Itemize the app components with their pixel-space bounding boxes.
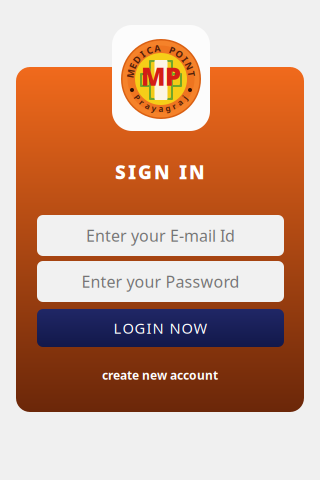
staticText: P: [158, 42, 164, 54]
staticText: E: [158, 42, 163, 54]
staticText: S I G N I N: [115, 160, 205, 184]
staticText: r: [159, 44, 163, 54]
button[interactable]: Enter your Password: [37, 261, 284, 302]
staticText: a: [158, 44, 163, 54]
staticText: M: [156, 42, 165, 54]
staticText: r: [159, 44, 163, 54]
staticText: y: [158, 44, 163, 54]
staticText: N: [157, 42, 165, 54]
staticText: I: [159, 42, 163, 54]
staticText: L O G I N N O W: [113, 318, 207, 338]
staticText: Enter your E-mail Id: [86, 225, 235, 246]
button[interactable]: L O G I N N O W: [37, 309, 284, 347]
button[interactable]: create new account: [16, 366, 304, 384]
staticText: create new account: [102, 367, 218, 383]
staticText: g: [158, 44, 163, 54]
staticText: A: [158, 42, 164, 54]
staticText: [160, 42, 162, 54]
staticText: T: [158, 42, 163, 54]
staticText: C: [158, 42, 164, 54]
staticText: a: [158, 44, 163, 54]
staticText: MP: [141, 59, 181, 93]
staticText: D: [157, 42, 164, 54]
staticText: j: [160, 44, 162, 54]
staticText: I: [159, 42, 163, 54]
staticText: a: [158, 44, 163, 54]
staticText: P: [158, 44, 163, 54]
staticText: O: [157, 42, 164, 54]
button[interactable]: Enter your E-mail Id: [37, 215, 284, 256]
staticText: Enter your Password: [81, 271, 239, 292]
